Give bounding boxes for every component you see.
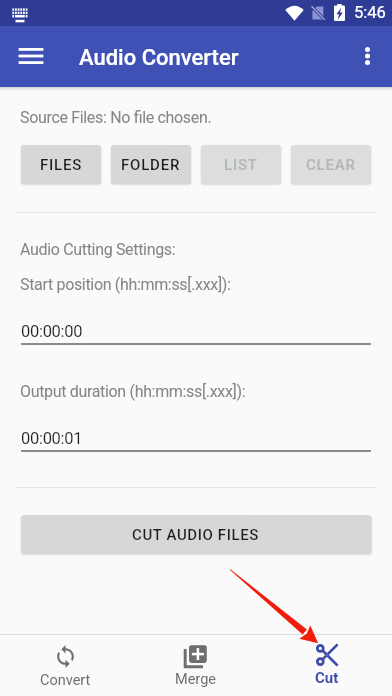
staticText: 5:46 [354,3,386,22]
staticText: 00:00:01 [21,429,83,448]
button[interactable]: Open navigation drawer [8,33,54,79]
button[interactable]: FILES [21,145,101,184]
staticText: Start position (hh:mm:ss[.xxx]): [20,275,231,294]
button[interactable]: More options [344,33,390,79]
staticText: Output duration (hh:mm:ss[.xxx]): [20,382,246,401]
staticText: LIST [224,156,258,174]
staticText: Audio Cutting Settings: [20,240,176,259]
staticText: Audio Converter [79,45,239,71]
staticText: Convert [40,672,91,689]
button[interactable]: LIST [201,145,281,184]
button[interactable]: CUT AUDIO FILES [21,515,371,554]
button[interactable]: FOLDER [111,145,191,184]
staticText: 00:00:00 [21,322,83,341]
staticText: Merge [175,671,216,688]
staticText: FOLDER [121,156,181,174]
button[interactable]: CLEAR [291,145,371,184]
button[interactable]: Convert [0,635,130,696]
button[interactable]: Merge [130,635,261,696]
staticText: Cut [315,669,339,687]
staticText: Source Files: No file chosen. [20,108,212,127]
staticText: CUT AUDIO FILES [132,526,260,544]
button[interactable]: Cut [261,635,392,696]
staticText: FILES [40,156,83,174]
staticText: CLEAR [306,156,356,174]
